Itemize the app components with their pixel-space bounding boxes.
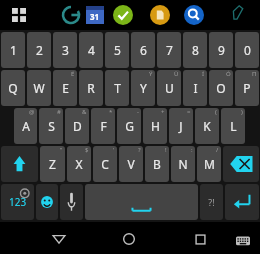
staticText: 7 (166, 42, 173, 58)
button[interactable]: Voice input (60, 184, 83, 220)
staticText: B (153, 156, 161, 172)
staticText: ) (241, 108, 243, 116)
staticText: $ (85, 146, 89, 154)
staticText: : (191, 146, 193, 154)
button[interactable]: 4 (79, 32, 103, 68)
staticText: C (101, 156, 109, 172)
button[interactable]: Google (61, 5, 81, 25)
button[interactable]: Backspace (223, 146, 259, 182)
staticText: П (252, 70, 257, 78)
staticText: X (75, 156, 83, 172)
button[interactable]: I (183, 70, 207, 106)
button[interactable]: 0 (235, 32, 259, 68)
staticText: ! (165, 146, 167, 154)
button[interactable]: Handwriting (228, 4, 246, 22)
button[interactable]: C (93, 146, 117, 182)
staticText: 123 (9, 195, 27, 209)
button[interactable]: Back (52, 232, 66, 246)
staticText: Y (140, 80, 147, 96)
staticText: 8 (192, 42, 199, 58)
staticText: 0 (244, 42, 251, 58)
button[interactable]: Space (85, 184, 198, 220)
staticText: * (109, 108, 113, 116)
button[interactable]: Z (40, 146, 65, 182)
button[interactable]: 9 (209, 32, 233, 68)
button[interactable]: P (235, 70, 259, 106)
button[interactable]: Recent apps (194, 233, 207, 246)
button[interactable]: Emoji (36, 184, 58, 220)
button[interactable]: Q (1, 70, 25, 106)
button[interactable]: O (209, 70, 233, 106)
staticText: K (203, 118, 211, 134)
button[interactable]: K (195, 108, 219, 144)
staticText: É (71, 70, 75, 78)
button[interactable]: X (67, 146, 91, 182)
staticText: A (22, 118, 30, 134)
button[interactable]: Documents (150, 5, 170, 25)
staticText: G (125, 118, 134, 134)
button[interactable]: D (65, 108, 89, 144)
button[interactable]: 1 (1, 32, 25, 68)
staticText: 4 (88, 42, 95, 58)
button[interactable]: Tasks (113, 5, 133, 25)
button[interactable]: L (221, 108, 245, 144)
button[interactable]: Apps (12, 8, 26, 22)
staticText: ?! (208, 196, 215, 208)
button[interactable]: J (169, 108, 193, 144)
button[interactable]: S (39, 108, 63, 144)
button[interactable]: R (79, 70, 103, 106)
staticText: W (33, 80, 45, 96)
staticText: 6 (140, 42, 147, 58)
staticText: Z (49, 156, 56, 172)
button[interactable]: 8 (183, 32, 207, 68)
button[interactable]: A (14, 108, 37, 144)
staticText: S (48, 118, 55, 134)
staticText: Ü (174, 70, 179, 78)
staticText: / (216, 146, 219, 154)
staticText: 9 (218, 42, 225, 58)
button[interactable]: H (143, 108, 167, 144)
button[interactable]: Enter (225, 184, 259, 220)
staticText: & (82, 108, 87, 116)
button[interactable]: Punctuation (200, 184, 223, 220)
staticText: I (193, 80, 198, 96)
button[interactable]: B (145, 146, 169, 182)
button[interactable]: N (171, 146, 195, 182)
staticText: L (230, 118, 237, 134)
staticText: 2 (36, 42, 43, 58)
button[interactable]: Symbols and settings (1, 184, 34, 220)
button[interactable]: 7 (157, 32, 181, 68)
button[interactable]: Search (184, 5, 204, 25)
staticText: Ó (226, 70, 231, 78)
button[interactable]: M (197, 146, 221, 182)
button[interactable]: 2 (27, 32, 51, 68)
button[interactable]: E (53, 70, 77, 106)
staticText: F (100, 118, 107, 134)
staticText: M (204, 156, 215, 172)
staticText: @ (29, 108, 35, 116)
button[interactable]: 6 (131, 32, 155, 68)
button[interactable]: V (119, 146, 143, 182)
button[interactable]: Shift (1, 146, 38, 182)
staticText: ' (113, 146, 115, 154)
button[interactable]: U (157, 70, 181, 106)
button[interactable]: G (117, 108, 141, 144)
staticText: Ÿ (149, 70, 153, 78)
staticText: 1 (10, 42, 17, 58)
staticText: + (161, 108, 165, 116)
button[interactable]: Home (122, 232, 136, 246)
staticText: 3 (62, 42, 69, 58)
button[interactable]: Y (131, 70, 155, 106)
staticText: ( (215, 108, 217, 116)
button[interactable]: F (91, 108, 115, 144)
button[interactable]: W (27, 70, 51, 106)
button[interactable]: Calendar (86, 6, 104, 24)
button[interactable]: 5 (105, 32, 129, 68)
staticText: " (60, 146, 63, 154)
staticText: 31 (90, 11, 100, 22)
button[interactable]: Switch keyboard (236, 234, 250, 248)
staticText: V (127, 156, 135, 172)
button[interactable]: 3 (53, 32, 77, 68)
staticText: 5 (114, 42, 121, 58)
button[interactable]: T (105, 70, 129, 106)
